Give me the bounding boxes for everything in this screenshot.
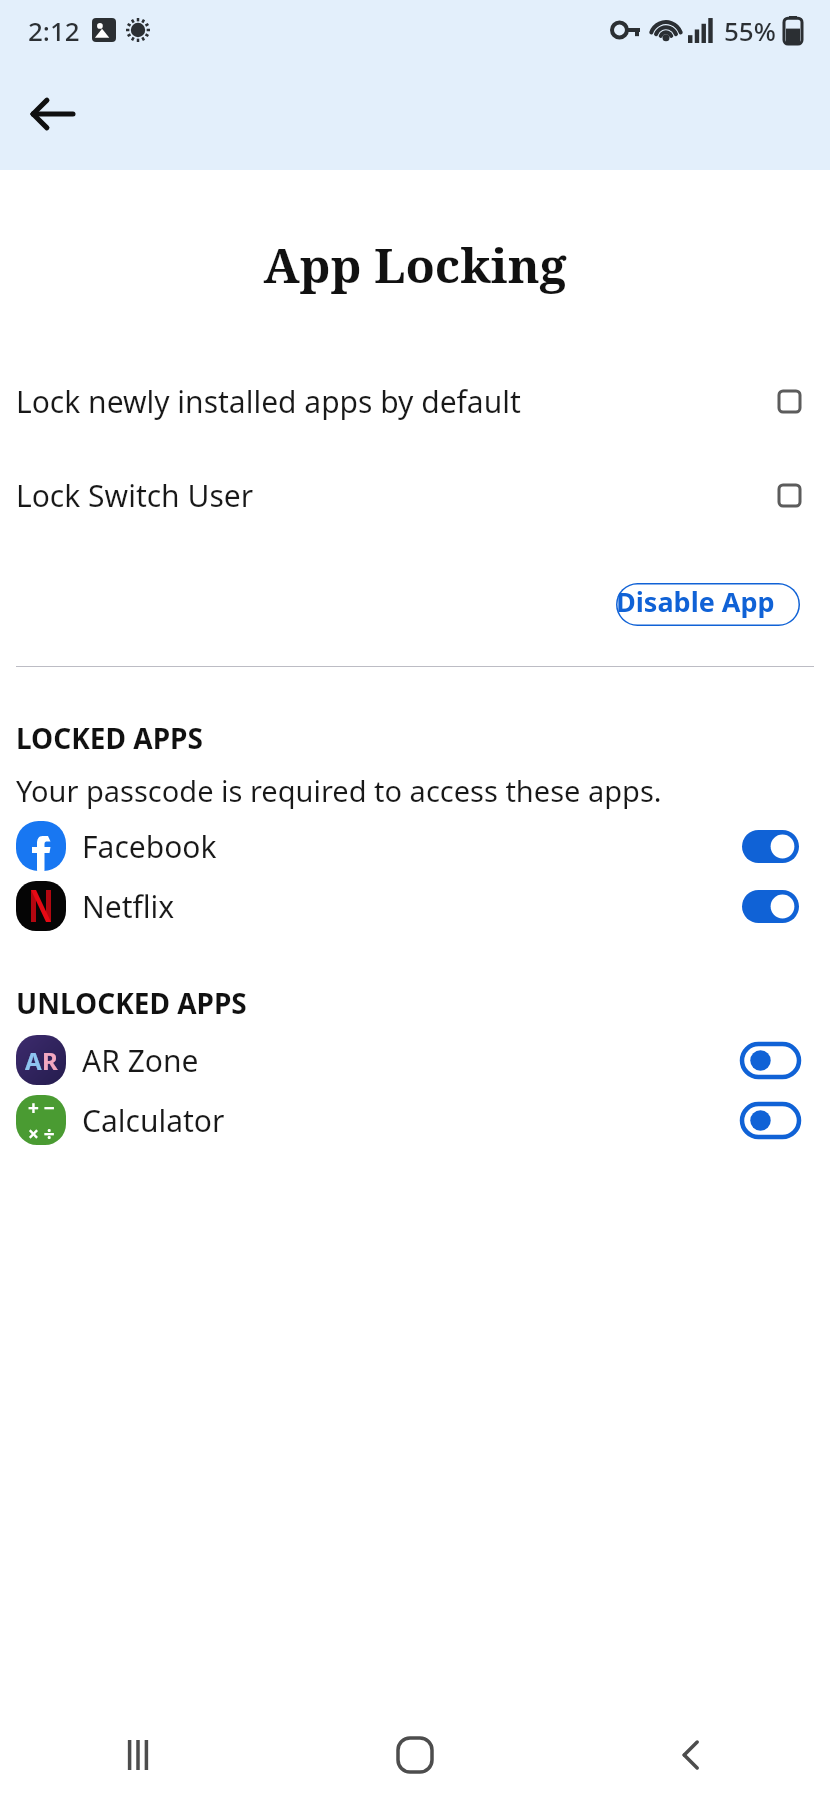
staticText: Lock Switch User <box>16 475 779 516</box>
button[interactable]: Unlocked, off <box>742 1104 799 1137</box>
staticText: 55% <box>724 13 776 48</box>
button[interactable]: Disable App Lock <box>616 583 800 626</box>
button[interactable]: Facebook <box>0 816 830 876</box>
button[interactable]: Lock newly installed apps by default <box>0 371 830 431</box>
button[interactable]: + − <box>0 1090 830 1150</box>
button[interactable]: Netflix <box>0 876 830 936</box>
staticText: + − <box>28 1095 55 1121</box>
staticText: 2:12 <box>28 13 80 48</box>
staticText: Facebook <box>82 826 742 867</box>
staticText: Your passcode is required to access thes… <box>16 771 814 810</box>
button[interactable]: Back <box>553 1710 830 1800</box>
staticText: AR Zone <box>82 1040 742 1081</box>
staticText: Disable App Lock <box>616 583 800 626</box>
staticText: A <box>25 1044 42 1077</box>
staticText: LOCKED APPS <box>16 719 203 757</box>
staticText: R <box>42 1044 58 1077</box>
button[interactable]: Lock Switch User <box>0 465 830 525</box>
button[interactable]: Recents <box>0 1710 276 1800</box>
staticText: Lock newly installed apps by default <box>16 381 779 422</box>
button[interactable]: Unlocked, off <box>742 1044 799 1077</box>
staticText: UNLOCKED APPS <box>16 984 247 1022</box>
staticText: Calculator <box>82 1100 742 1141</box>
staticText: App Locking <box>0 232 830 297</box>
staticText: × ÷ <box>28 1121 55 1145</box>
button[interactable]: Home <box>276 1710 553 1800</box>
button[interactable]: Locked, on <box>742 830 799 863</box>
button[interactable]: A <box>0 1030 830 1090</box>
button[interactable]: Back <box>16 78 88 150</box>
staticText: Netflix <box>82 886 742 927</box>
button[interactable]: Locked, on <box>742 890 799 923</box>
